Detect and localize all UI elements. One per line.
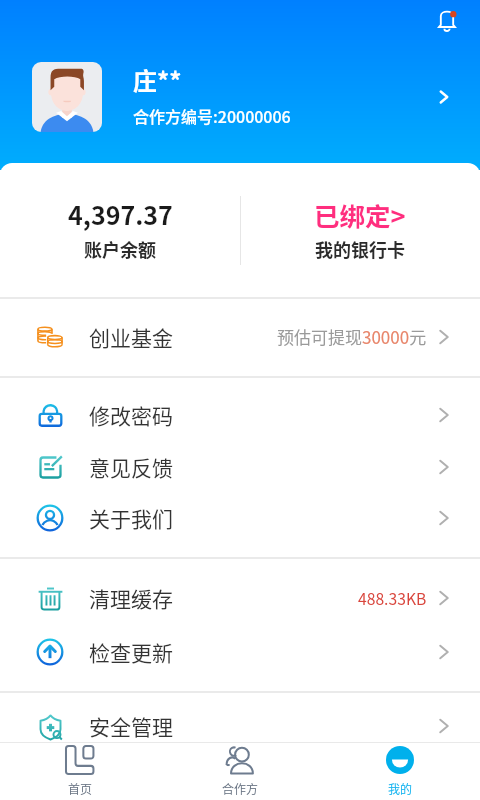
button[interactable]: 清理缓存 xyxy=(0,572,480,624)
button[interactable]: 已绑定> xyxy=(240,163,480,297)
staticText: 修改密码 xyxy=(89,400,173,430)
staticText: 4,397.37 xyxy=(68,196,173,232)
button[interactable]: 检查更新 xyxy=(0,626,480,678)
button[interactable]: 首页 xyxy=(0,742,160,800)
button[interactable]: Notifications xyxy=(429,3,465,39)
button[interactable]: 我的 xyxy=(320,742,480,800)
staticText: 检查更新 xyxy=(89,637,173,667)
staticText: 我的银行卡 xyxy=(315,236,405,262)
staticText: 488.33KB xyxy=(358,587,427,610)
button[interactable]: 安全管理 xyxy=(0,700,480,752)
staticText: 我的 xyxy=(388,780,413,797)
button[interactable]: 关于我们 xyxy=(0,492,480,544)
staticText: 关于我们 xyxy=(89,503,173,533)
staticText: 庄** xyxy=(133,62,182,97)
button[interactable]: 意见反馈 xyxy=(0,441,480,493)
button[interactable]: 庄** xyxy=(0,52,480,142)
button[interactable]: 创业基金 xyxy=(0,297,480,376)
staticText: 清理缓存 xyxy=(89,583,173,613)
button[interactable]: 修改密码 xyxy=(0,389,480,441)
staticText: 合作方 xyxy=(222,780,259,797)
staticText: 预估可提现30000元 xyxy=(277,324,427,349)
button[interactable]: 合作方 xyxy=(160,742,320,800)
staticText: 首页 xyxy=(68,780,93,797)
staticText: 创业基金 xyxy=(89,322,173,352)
staticText: 意见反馈 xyxy=(89,452,173,482)
staticText: 安全管理 xyxy=(89,711,173,741)
staticText: 账户余额 xyxy=(84,236,156,262)
button[interactable]: 4,397.37 xyxy=(0,163,240,297)
staticText: 已绑定> xyxy=(314,196,406,233)
staticText: 合作方编号:20000006 xyxy=(133,104,291,127)
